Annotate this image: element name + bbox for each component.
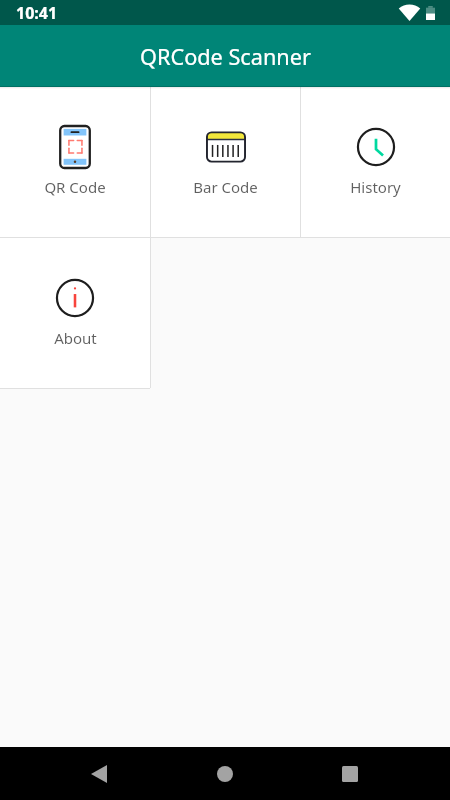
button[interactable]: History: [301, 87, 450, 237]
button[interactable]: Bar Code: [151, 87, 300, 237]
button[interactable]: Back: [77, 752, 121, 796]
button[interactable]: About: [0, 238, 150, 388]
staticText: About: [54, 328, 97, 348]
staticText: QR Code: [44, 177, 106, 197]
button[interactable]: Home: [203, 752, 247, 796]
staticText: QRCode Scanner: [140, 42, 311, 72]
staticText: 10:41: [16, 2, 58, 24]
staticText: History: [350, 177, 401, 197]
staticText: Bar Code: [193, 177, 258, 197]
button[interactable]: QR Code: [0, 87, 150, 237]
button[interactable]: Recent apps: [328, 752, 372, 796]
